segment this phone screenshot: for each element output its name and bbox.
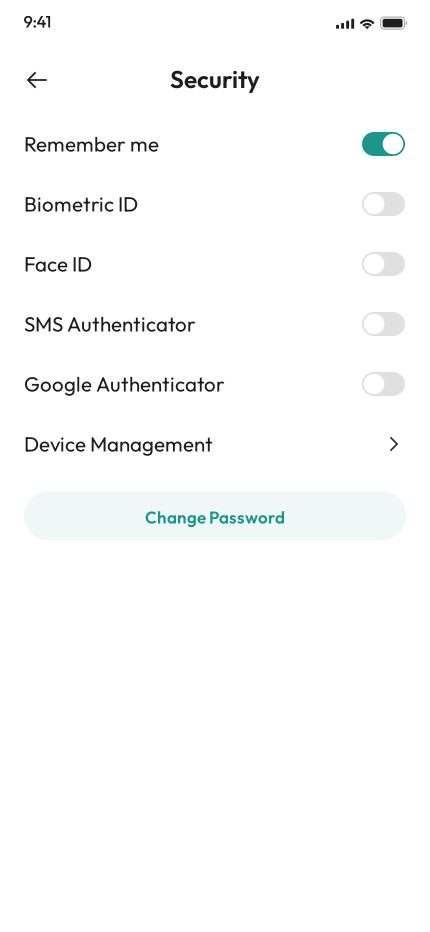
button[interactable]: SMS Authenticator xyxy=(0,294,430,354)
staticText: Biometric ID xyxy=(24,191,138,217)
button[interactable]: Remember me xyxy=(0,114,430,174)
staticText: SMS Authenticator xyxy=(24,311,196,337)
staticText: Device Management xyxy=(24,431,213,457)
staticText: Change Password xyxy=(145,506,285,528)
button[interactable]: Biometric ID xyxy=(0,174,430,234)
staticText: Face ID xyxy=(24,251,92,277)
staticText: Google Authenticator xyxy=(24,371,225,397)
staticText: Remember me xyxy=(24,131,159,157)
button[interactable]: Device Management xyxy=(0,414,430,474)
staticText: Security xyxy=(170,64,260,94)
staticText: 9:41 xyxy=(23,11,51,32)
button[interactable]: Back xyxy=(0,58,71,102)
button[interactable]: Google Authenticator xyxy=(0,354,430,414)
button[interactable]: Change Password xyxy=(24,491,406,540)
button[interactable]: Face ID xyxy=(0,234,430,294)
